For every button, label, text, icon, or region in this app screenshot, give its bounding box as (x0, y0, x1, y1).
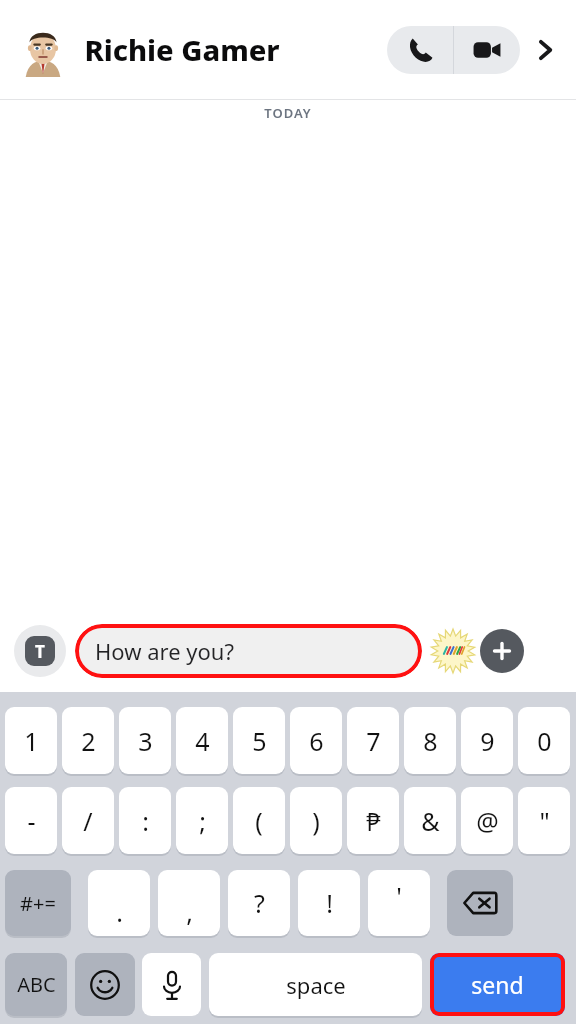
button[interactable]: 6 (290, 707, 342, 774)
button[interactable]: How are you? (75, 624, 422, 678)
button[interactable]: , (158, 870, 220, 936)
button[interactable]: @ (461, 787, 513, 854)
staticText: space (286, 970, 346, 1000)
staticText: #+= (20, 890, 56, 917)
staticText: ! (326, 886, 333, 920)
staticText: 0 (537, 724, 552, 758)
staticText: Richie Gamer (84, 30, 280, 69)
staticText: @ (476, 804, 499, 838)
staticText: 8 (423, 724, 438, 758)
button[interactable]: & (404, 787, 456, 854)
button[interactable]: 7 (347, 707, 399, 774)
button[interactable]: ₱ (347, 787, 399, 854)
button[interactable]: Text style (14, 625, 66, 677)
staticText: T (35, 640, 45, 663)
staticText: 6 (309, 724, 324, 758)
staticText: ₱ (366, 804, 381, 838)
staticText: ) (312, 804, 320, 838)
staticText: TODAY (264, 104, 312, 122)
staticText: ' (396, 879, 402, 913)
button[interactable]: Voice input (142, 953, 201, 1016)
staticText: 2 (81, 724, 96, 758)
button[interactable]: 5 (233, 707, 285, 774)
staticText: / (83, 804, 93, 838)
staticText: 4 (195, 724, 210, 758)
button[interactable]: ) (290, 787, 342, 854)
button[interactable]: : (119, 787, 171, 854)
button[interactable]: ? (228, 870, 290, 936)
button[interactable]: - (5, 787, 57, 854)
staticText: ABC (17, 971, 56, 998)
staticText: 5 (252, 724, 267, 758)
button[interactable]: space (209, 953, 422, 1016)
button[interactable]: 4 (176, 707, 228, 774)
staticText: , (186, 895, 193, 929)
staticText: 7 (366, 724, 381, 758)
button[interactable]: ; (176, 787, 228, 854)
staticText: : (142, 804, 149, 838)
button[interactable]: #+= (5, 870, 71, 936)
staticText: " (539, 804, 550, 838)
button[interactable]: Add attachment (480, 629, 524, 673)
staticText: ? (254, 886, 265, 920)
staticText: ; (199, 804, 206, 838)
staticText: ( (255, 804, 263, 838)
button[interactable]: Backspace (447, 870, 513, 936)
staticText: 3 (138, 724, 153, 758)
button[interactable]: / (62, 787, 114, 854)
button[interactable]: Emoji (75, 953, 135, 1016)
button[interactable]: Video call (454, 26, 520, 74)
staticText: 1 (24, 724, 39, 758)
button[interactable]: More (520, 26, 570, 74)
button[interactable]: " (518, 787, 570, 854)
button[interactable]: ' (368, 870, 430, 936)
button[interactable]: ! (298, 870, 360, 936)
button[interactable]: ABC (5, 953, 67, 1016)
button[interactable]: 9 (461, 707, 513, 774)
button[interactable]: 2 (62, 707, 114, 774)
button[interactable]: Voice call (387, 26, 453, 74)
staticText: - (27, 804, 36, 838)
button[interactable]: Sticker (430, 628, 476, 674)
staticText: 9 (480, 724, 495, 758)
button[interactable]: 0 (518, 707, 570, 774)
staticText: How are you? (95, 636, 234, 666)
button[interactable]: send (430, 953, 565, 1016)
button[interactable]: 3 (119, 707, 171, 774)
button[interactable]: 8 (404, 707, 456, 774)
button[interactable]: ( (233, 787, 285, 854)
staticText: & (421, 804, 440, 838)
staticText: . (116, 895, 123, 929)
staticText: send (471, 969, 524, 1000)
button[interactable]: Profile avatar (16, 23, 70, 77)
button[interactable]: 1 (5, 707, 57, 774)
button[interactable]: . (88, 870, 150, 936)
